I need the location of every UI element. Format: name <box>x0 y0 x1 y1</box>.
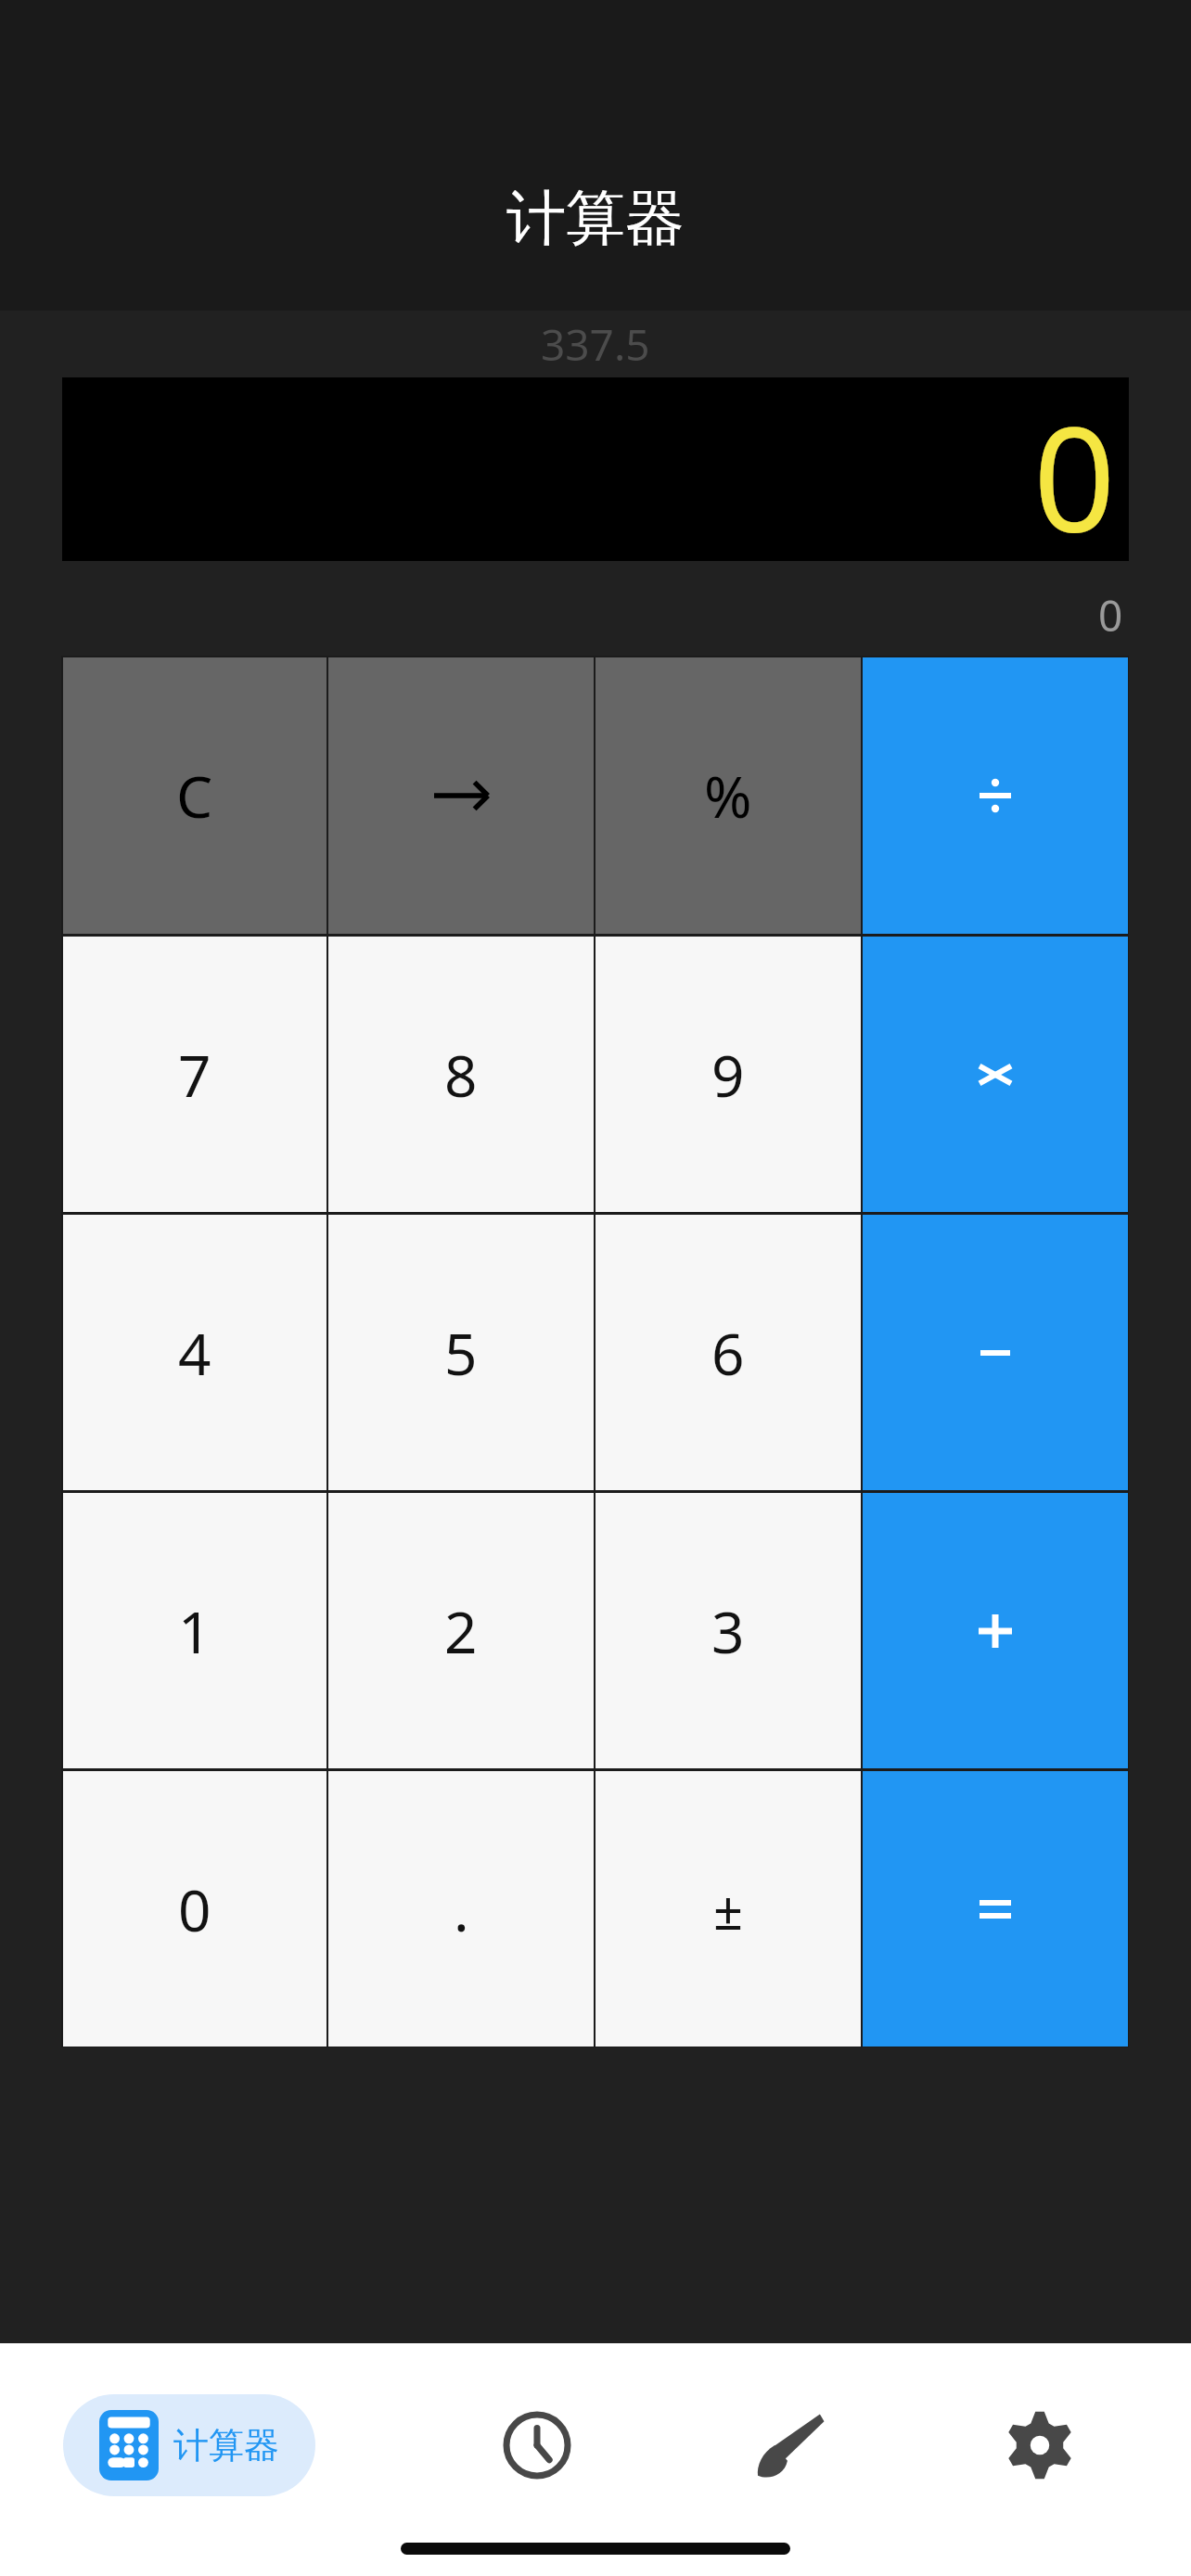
button[interactable]: 6 <box>595 1215 861 1490</box>
button[interactable]: % <box>595 657 861 934</box>
button[interactable]: Multiply <box>863 937 1128 1212</box>
button[interactable]: 8 <box>328 937 594 1212</box>
other: Equals <box>958 1872 1032 1946</box>
staticText: . <box>454 1870 469 1948</box>
button[interactable]: Equals <box>863 1771 1128 2047</box>
button[interactable]: 9 <box>595 937 861 1212</box>
button[interactable]: Settings <box>970 2390 1109 2501</box>
staticText: 0 <box>1098 586 1123 644</box>
staticText: 6 <box>711 1314 745 1392</box>
staticText: % <box>704 757 752 835</box>
button[interactable]: History <box>467 2390 607 2501</box>
staticText: 5 <box>444 1314 478 1392</box>
staticText: ± <box>713 1874 744 1945</box>
staticText: 计算器 <box>506 181 685 256</box>
other: Divide <box>958 759 1032 833</box>
staticText: 337.5 <box>541 315 650 374</box>
button[interactable]: 2 <box>328 1493 594 1768</box>
button[interactable]: C <box>63 657 327 934</box>
staticText: 计算器 <box>173 2423 279 2468</box>
staticText: 0 <box>178 1870 211 1948</box>
button[interactable]: 5 <box>328 1215 594 1490</box>
staticText: 3 <box>711 1592 745 1670</box>
button[interactable]: 1 <box>63 1493 327 1768</box>
staticText: 4 <box>178 1314 211 1392</box>
button[interactable]: . <box>328 1771 594 2047</box>
button[interactable]: Backspace <box>328 657 594 934</box>
button[interactable]: 3 <box>595 1493 861 1768</box>
button[interactable]: 4 <box>63 1215 327 1490</box>
other: Multiply <box>958 1038 1032 1112</box>
staticText: 9 <box>711 1036 745 1114</box>
staticText: 7 <box>178 1036 211 1114</box>
button[interactable]: ± <box>595 1771 861 2047</box>
button[interactable]: Divide <box>863 657 1128 934</box>
button[interactable]: 计算器 <box>63 2394 315 2496</box>
button[interactable]: Themes <box>721 2390 860 2501</box>
other: Backspace <box>424 759 498 833</box>
button[interactable]: 7 <box>63 937 327 1212</box>
other: Add <box>958 1594 1032 1668</box>
staticText: 8 <box>444 1036 478 1114</box>
button[interactable]: Subtract <box>863 1215 1128 1490</box>
staticText: 1 <box>178 1592 211 1670</box>
button[interactable]: 0 <box>63 1771 327 2047</box>
other: Subtract <box>958 1316 1032 1390</box>
staticText: C <box>176 757 213 835</box>
staticText: 0 <box>1033 377 1116 561</box>
staticText: 2 <box>444 1592 478 1670</box>
button[interactable]: Add <box>863 1493 1128 1768</box>
